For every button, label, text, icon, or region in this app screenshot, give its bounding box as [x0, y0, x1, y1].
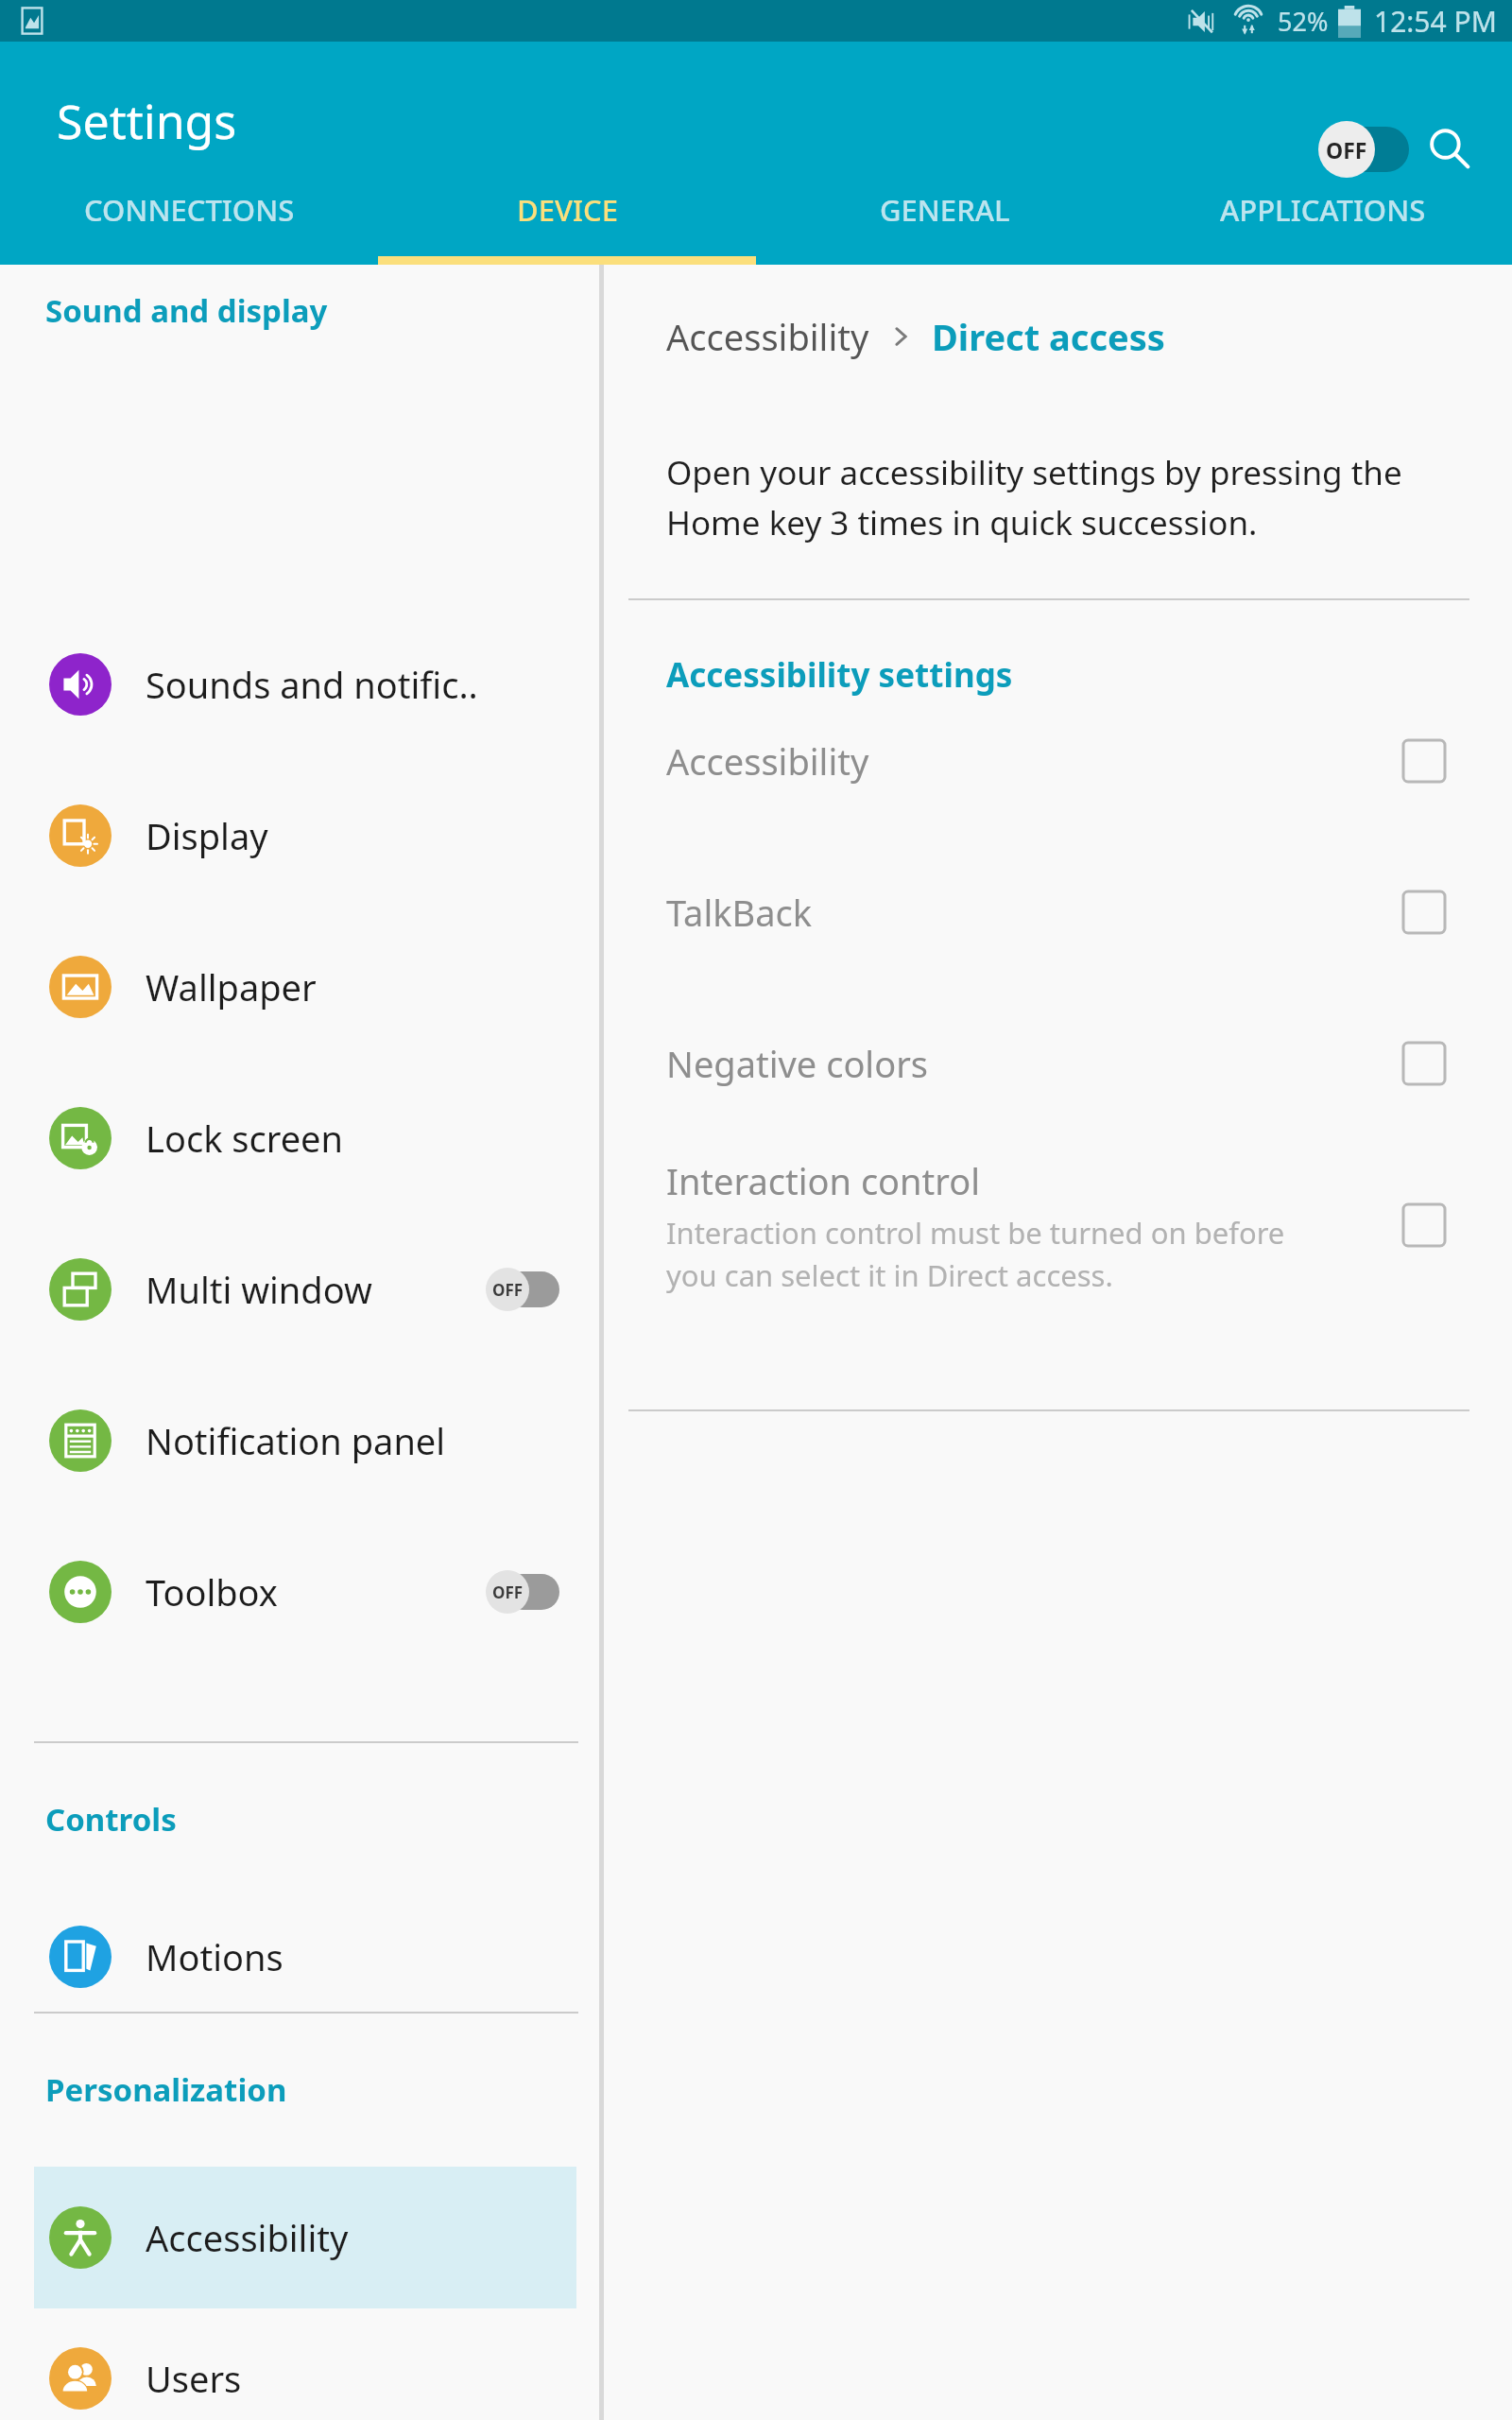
staticText: Sound and display — [45, 289, 328, 332]
button[interactable]: CONNECTIONS — [0, 155, 378, 265]
button[interactable]: Direct access — [932, 312, 1165, 361]
button[interactable]: Accessibility — [666, 312, 869, 361]
button[interactable]: Toolbox — [0, 1539, 599, 1645]
button[interactable]: TalkBack — [604, 851, 1483, 974]
button[interactable]: Motions — [0, 1904, 599, 2010]
button[interactable]: Wallpaper — [0, 934, 599, 1040]
staticText: Direct access — [932, 312, 1165, 361]
staticText: Open your accessibility settings by pres… — [666, 450, 1488, 544]
staticText: Sounds and notific.. — [146, 660, 478, 709]
staticText: 12:54 PM — [1374, 2, 1497, 41]
staticText: OFF — [492, 1279, 524, 1301]
staticText: Settings — [57, 89, 237, 153]
staticText: Motions — [146, 1932, 283, 1981]
button[interactable]: Accessibility — [34, 2167, 576, 2308]
button[interactable]: Interaction control — [604, 1131, 1483, 1320]
staticText: Toolbox — [146, 1567, 278, 1616]
button[interactable]: DEVICE — [378, 155, 756, 265]
button[interactable]: Accessibility — [604, 700, 1483, 822]
other: TalkBack checkbox, unchecked — [1403, 891, 1445, 933]
staticText: DEVICE — [517, 190, 618, 230]
button[interactable]: Master switch, off — [1318, 117, 1418, 181]
staticText: Accessibility settings — [666, 652, 1013, 698]
button[interactable]: Toggle, off — [486, 1265, 561, 1314]
button[interactable]: Sounds and notific.. — [0, 631, 599, 737]
button[interactable]: Display — [0, 783, 599, 889]
staticText: Notification panel — [146, 1416, 446, 1465]
other: Accessibility checkbox, unchecked — [1403, 740, 1445, 782]
staticText: Users — [146, 2354, 242, 2403]
staticText: Interaction control — [666, 1156, 981, 1205]
button[interactable]: APPLICATIONS — [1134, 155, 1512, 265]
other: Interaction control checkbox, unchecked — [1403, 1204, 1445, 1246]
staticText: Accessibility — [146, 2213, 349, 2262]
button[interactable]: Search — [1417, 117, 1482, 181]
staticText: OFF — [1326, 135, 1367, 164]
staticText: Display — [146, 811, 268, 860]
staticText: APPLICATIONS — [1220, 190, 1426, 230]
staticText: Wallpaper — [146, 962, 317, 1011]
other: Negative colors checkbox, unchecked — [1403, 1043, 1445, 1084]
staticText: CONNECTIONS — [84, 190, 295, 230]
staticText: Multi window — [146, 1265, 372, 1314]
staticText: OFF — [492, 1582, 524, 1603]
staticText: Controls — [45, 1798, 177, 1841]
staticText: 52% — [1278, 4, 1329, 39]
staticText: Accessibility — [666, 736, 869, 786]
button[interactable]: Multi window — [0, 1236, 599, 1342]
staticText: Accessibility — [666, 312, 869, 361]
staticText: Lock screen — [146, 1114, 344, 1163]
staticText: Interaction control must be turned on be… — [666, 1213, 1285, 1295]
staticText: Personalization — [45, 2068, 287, 2111]
button[interactable]: Notification panel — [0, 1388, 599, 1494]
staticText: Negative colors — [666, 1039, 929, 1088]
button[interactable]: Lock screen — [0, 1085, 599, 1191]
button[interactable]: Users — [0, 2325, 599, 2420]
button[interactable]: Negative colors — [604, 1002, 1483, 1125]
staticText: TalkBack — [666, 888, 813, 937]
button[interactable]: Toggle, off — [486, 1567, 561, 1616]
staticText: GENERAL — [880, 190, 1010, 230]
button[interactable]: GENERAL — [756, 155, 1134, 265]
